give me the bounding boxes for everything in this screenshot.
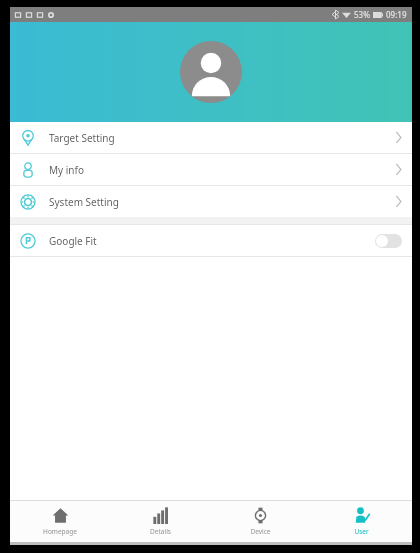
button[interactable]: My info [10, 154, 412, 185]
staticText: Homepage [43, 527, 77, 536]
staticText: My info [49, 163, 85, 177]
button[interactable]: System Setting [10, 186, 412, 217]
button[interactable]: Google Fit toggle, off [375, 234, 402, 248]
staticText: User [354, 527, 369, 536]
staticText: Details [150, 527, 171, 536]
button[interactable]: Details [110, 501, 210, 542]
button[interactable]: User [311, 501, 412, 542]
staticText: 53% [354, 9, 370, 20]
staticText: Google Fit [49, 234, 97, 248]
staticText: Device [250, 527, 271, 536]
button[interactable]: Profile photo [180, 41, 242, 103]
staticText: 09:19 [386, 9, 407, 20]
button[interactable]: Device [210, 501, 311, 542]
staticText: Target Setting [49, 131, 115, 145]
button[interactable]: Google Fit [10, 225, 412, 256]
button[interactable]: Target Setting [10, 122, 412, 153]
staticText: System Setting [49, 195, 119, 209]
button[interactable]: Homepage [10, 501, 110, 542]
